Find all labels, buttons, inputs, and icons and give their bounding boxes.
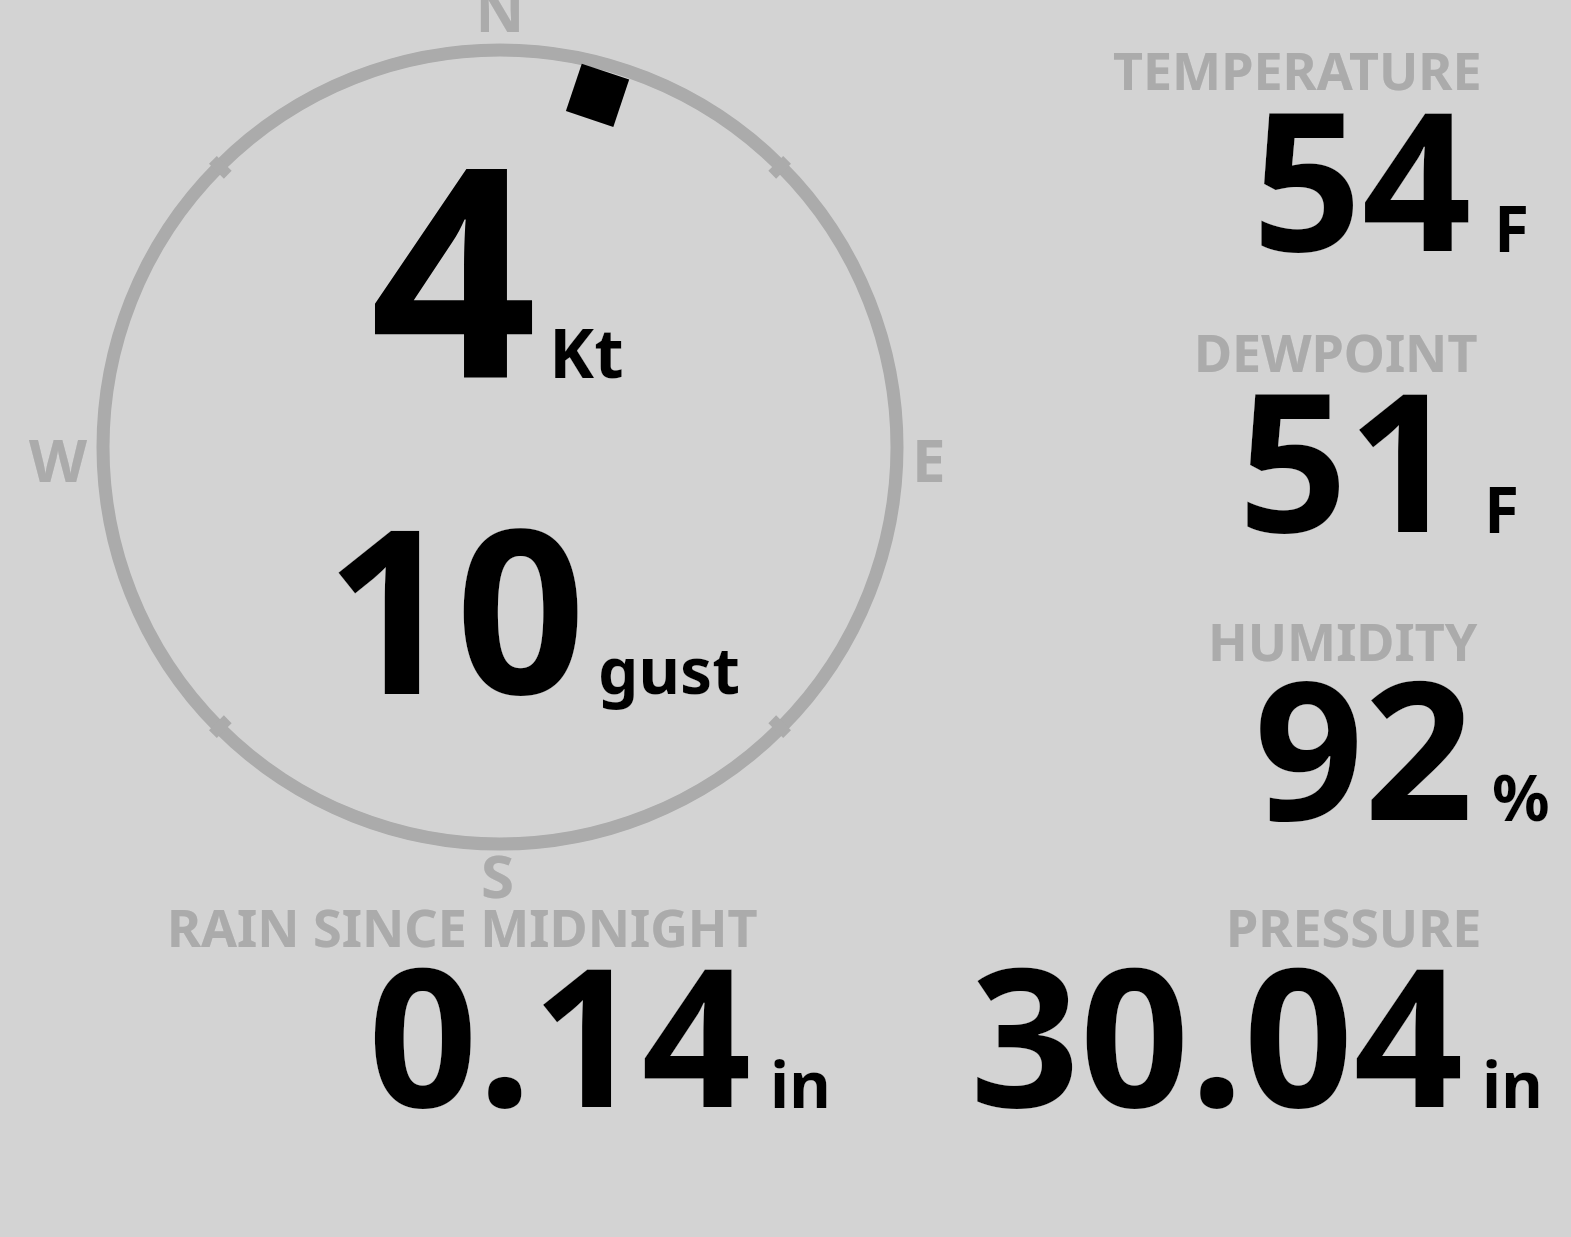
button[interactable]: Weather conditions dashboard <box>0 0 1571 1237</box>
